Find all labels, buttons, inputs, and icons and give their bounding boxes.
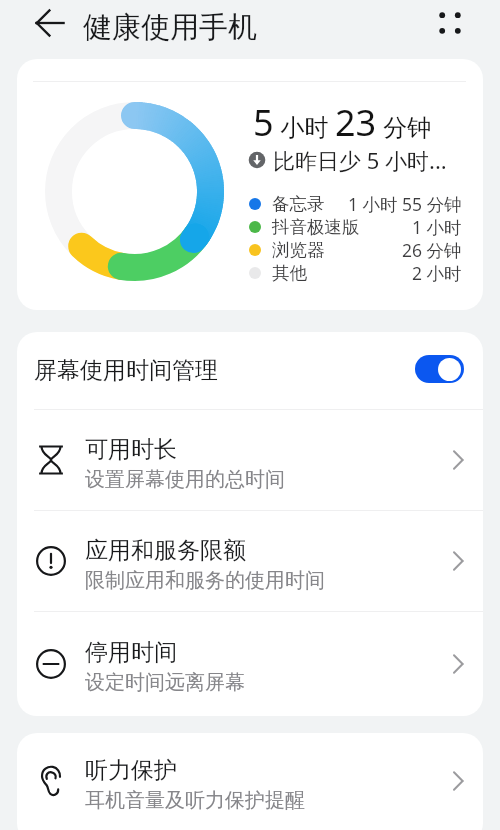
- staticText: 设定时间远离屏幕: [85, 670, 245, 695]
- staticText: 屏幕使用时间管理: [34, 356, 218, 385]
- staticText: 5: [253, 98, 274, 147]
- staticText: 1 小时: [412, 215, 462, 238]
- staticText: 26 分钟: [402, 238, 462, 261]
- staticText: 设置屏幕使用的总时间: [85, 467, 285, 492]
- button[interactable]: More options: [427, 0, 473, 46]
- staticText: 小时: [274, 110, 335, 143]
- staticText: 1 小时 55 分钟: [348, 192, 462, 215]
- button[interactable]: 停用时间: [17, 612, 483, 715]
- button[interactable]: Screen time management toggle: [415, 355, 464, 383]
- staticText: 听力保护: [85, 756, 177, 785]
- staticText: 分钟: [377, 110, 432, 143]
- staticText: 23: [335, 98, 377, 147]
- staticText: 浏览器: [272, 239, 325, 261]
- button[interactable]: 屏幕使用时间管理: [17, 332, 483, 409]
- button[interactable]: 可用时长: [17, 410, 483, 510]
- staticText: 耳机音量及听力保护提醒: [85, 788, 305, 813]
- staticText: 停用时间: [85, 638, 177, 667]
- staticText: 健康使用手机: [83, 9, 257, 46]
- staticText: 比昨日少 5 小时...: [273, 145, 447, 175]
- staticText: 限制应用和服务的使用时间: [85, 568, 325, 593]
- button[interactable]: Back: [27, 0, 73, 46]
- staticText: 备忘录: [272, 193, 325, 215]
- staticText: 2 小时: [412, 261, 462, 284]
- staticText: 可用时长: [85, 435, 177, 464]
- staticText: 抖音极速版: [272, 216, 360, 238]
- staticText: 其他: [272, 262, 307, 284]
- button[interactable]: 应用和服务限额: [17, 511, 483, 611]
- button[interactable]: 听力保护: [17, 733, 483, 829]
- staticText: 应用和服务限额: [85, 536, 246, 565]
